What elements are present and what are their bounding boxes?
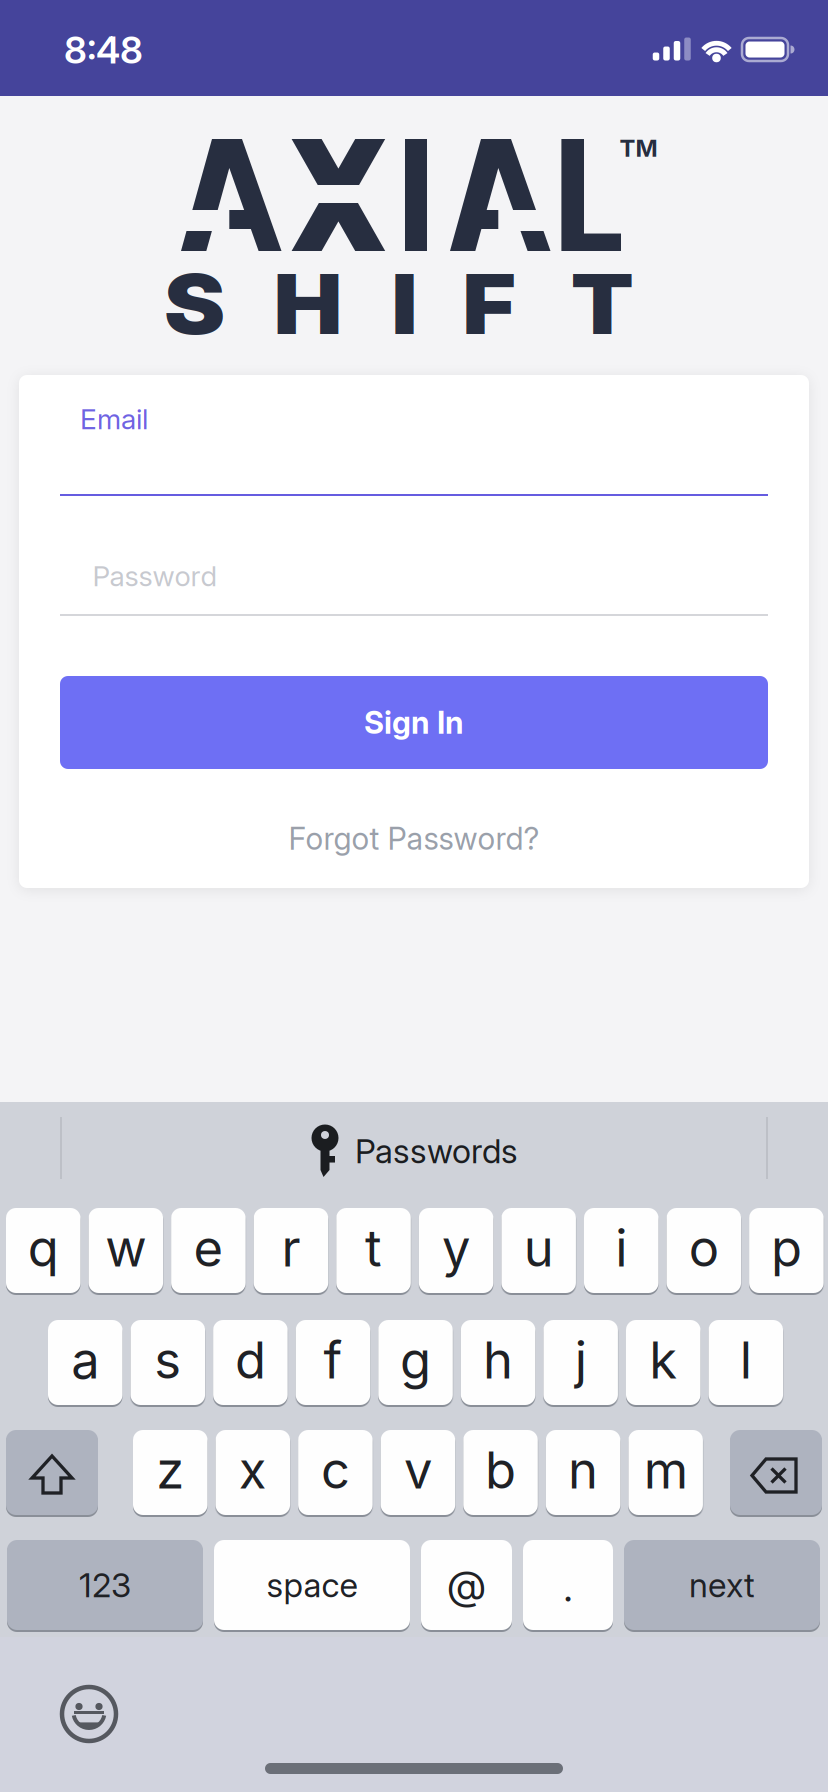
staticText: Password bbox=[92, 559, 217, 592]
button[interactable]: m bbox=[628, 1430, 703, 1515]
button[interactable]: Email bbox=[40, 396, 788, 500]
staticText: g bbox=[400, 1330, 431, 1390]
button[interactable]: f bbox=[296, 1320, 370, 1405]
staticText: . bbox=[563, 1563, 572, 1611]
button[interactable]: Forgot Password? bbox=[288, 820, 539, 857]
staticText: s bbox=[154, 1330, 181, 1390]
button[interactable]: l bbox=[709, 1320, 783, 1405]
button[interactable]: t bbox=[336, 1208, 411, 1293]
staticText: Passwords bbox=[355, 1131, 518, 1171]
staticText: Email bbox=[80, 402, 148, 435]
staticText: c bbox=[321, 1440, 350, 1500]
staticText: a bbox=[71, 1330, 99, 1390]
staticText: b bbox=[485, 1440, 516, 1500]
button[interactable]: j bbox=[543, 1320, 618, 1405]
button[interactable]: x bbox=[216, 1430, 290, 1515]
button[interactable]: @ bbox=[421, 1540, 512, 1630]
staticText: TM bbox=[619, 134, 657, 162]
button[interactable]: w bbox=[89, 1208, 163, 1293]
staticText: d bbox=[235, 1330, 266, 1390]
button[interactable]: r bbox=[254, 1208, 328, 1293]
button[interactable]: o bbox=[667, 1208, 741, 1293]
button[interactable]: k bbox=[626, 1320, 700, 1405]
staticText: Sign In bbox=[364, 704, 464, 741]
button[interactable]: h bbox=[461, 1320, 535, 1405]
staticText: f bbox=[323, 1330, 342, 1390]
button[interactable]: d bbox=[213, 1320, 288, 1405]
button[interactable]: g bbox=[378, 1320, 453, 1405]
staticText: p bbox=[771, 1218, 802, 1278]
staticText: y bbox=[442, 1218, 470, 1278]
staticText: u bbox=[524, 1218, 554, 1278]
staticText: o bbox=[689, 1218, 719, 1278]
staticText: T bbox=[574, 255, 631, 353]
staticText: S bbox=[167, 255, 222, 353]
staticText: H bbox=[277, 255, 339, 353]
staticText: space bbox=[266, 1565, 357, 1605]
staticText: h bbox=[483, 1330, 513, 1390]
button[interactable]: b bbox=[463, 1430, 538, 1515]
staticText: 8:48 bbox=[64, 28, 143, 72]
button[interactable]: c bbox=[298, 1430, 373, 1515]
staticText: Forgot Password? bbox=[288, 820, 539, 857]
button[interactable]: y bbox=[419, 1208, 493, 1293]
button[interactable]: n bbox=[546, 1430, 620, 1515]
button[interactable]: q bbox=[6, 1208, 80, 1293]
staticText: t bbox=[365, 1218, 382, 1278]
button[interactable]: 123 bbox=[7, 1540, 203, 1630]
staticText: m bbox=[644, 1440, 688, 1500]
button[interactable]: next bbox=[624, 1540, 820, 1630]
staticText: j bbox=[575, 1330, 587, 1390]
button[interactable]: i bbox=[584, 1208, 658, 1293]
button[interactable]: z bbox=[133, 1430, 207, 1515]
button[interactable]: v bbox=[381, 1430, 455, 1515]
staticText: q bbox=[28, 1218, 59, 1278]
staticText: i bbox=[615, 1218, 627, 1278]
button[interactable]: e bbox=[171, 1208, 246, 1293]
staticText: I bbox=[392, 255, 416, 353]
staticText: 123 bbox=[79, 1565, 131, 1605]
staticText: x bbox=[239, 1440, 267, 1500]
button[interactable]: u bbox=[501, 1208, 576, 1293]
staticText: w bbox=[105, 1218, 146, 1278]
button[interactable]: Passwords bbox=[310, 1125, 518, 1177]
button[interactable]: Password bbox=[40, 540, 788, 625]
button[interactable]: Shift bbox=[6, 1430, 98, 1515]
button[interactable]: s bbox=[131, 1320, 205, 1405]
staticText: @ bbox=[447, 1561, 486, 1609]
button[interactable]: space bbox=[214, 1540, 410, 1630]
staticText: F bbox=[465, 255, 513, 353]
staticText: next bbox=[689, 1565, 755, 1605]
staticText: l bbox=[740, 1330, 752, 1390]
button[interactable]: p bbox=[749, 1208, 824, 1293]
button[interactable]: a bbox=[48, 1320, 122, 1405]
staticText: r bbox=[281, 1218, 300, 1278]
button[interactable]: . bbox=[523, 1540, 613, 1630]
staticText: z bbox=[156, 1440, 184, 1500]
staticText: n bbox=[568, 1440, 598, 1500]
button[interactable]: Sign In bbox=[60, 676, 768, 769]
staticText: k bbox=[649, 1330, 677, 1390]
staticText: v bbox=[404, 1440, 432, 1500]
button[interactable]: Emoji bbox=[59, 1684, 119, 1744]
staticText: e bbox=[193, 1218, 223, 1278]
button[interactable]: Delete bbox=[730, 1430, 822, 1515]
